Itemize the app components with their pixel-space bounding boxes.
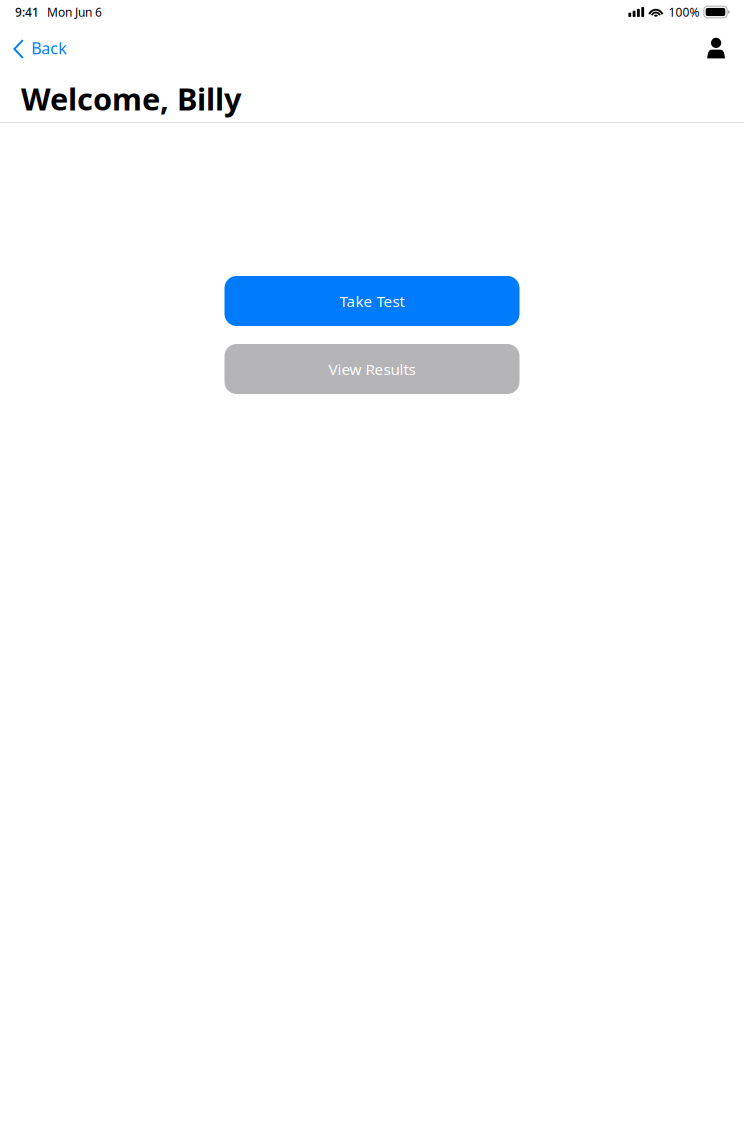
button[interactable]: Take Test [224,276,519,326]
staticText: View Results [328,359,415,379]
button[interactable]: Profile [696,24,736,72]
button[interactable]: View Results [224,344,519,394]
staticText: 9:41 [15,4,39,20]
staticText: Mon Jun 6 [47,4,102,20]
staticText: 100% [669,4,700,20]
staticText: Take Test [339,291,404,311]
button[interactable]: Back [0,24,79,72]
staticText: Welcome, Billy [21,78,242,119]
staticText: Back [31,37,67,59]
